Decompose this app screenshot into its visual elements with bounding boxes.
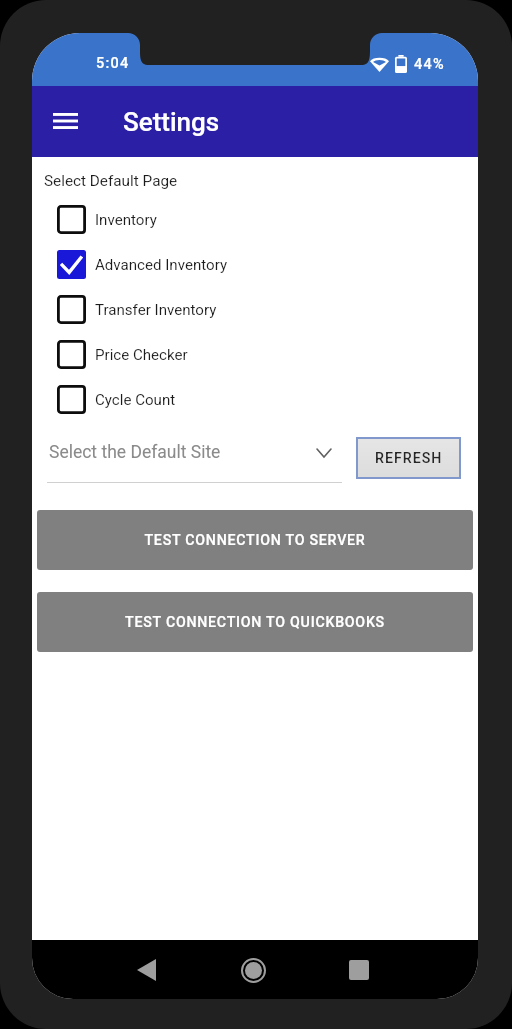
staticText: TEST CONNECTION TO SERVER — [144, 532, 366, 549]
button[interactable]: Home — [229, 946, 277, 994]
staticText: Transfer Inventory — [95, 301, 217, 319]
button[interactable]: TEST CONNECTION TO SERVER — [37, 510, 473, 570]
staticText: Cycle Count — [95, 391, 176, 409]
button[interactable]: Back — [122, 946, 170, 994]
button[interactable]: Transfer Inventory — [32, 287, 478, 332]
staticText: Inventory — [95, 211, 157, 229]
staticText: Select Default Page — [44, 172, 178, 190]
button[interactable]: Open navigation menu — [43, 99, 87, 143]
button[interactable]: Advanced Inventory — [32, 242, 478, 287]
button[interactable]: Inventory — [32, 197, 478, 242]
button[interactable]: REFRESH — [356, 437, 461, 479]
staticText: TEST CONNECTION TO QUICKBOOKS — [125, 614, 385, 631]
button[interactable]: Cycle Count — [32, 377, 478, 422]
staticText: Price Checker — [95, 346, 188, 364]
button[interactable]: Price Checker — [32, 332, 478, 377]
staticText: Settings — [123, 107, 220, 137]
staticText: 5:04 — [96, 55, 130, 72]
button[interactable]: Recent apps — [335, 946, 383, 994]
button[interactable]: Select the Default Site — [47, 433, 342, 483]
button[interactable]: TEST CONNECTION TO QUICKBOOKS — [37, 592, 473, 652]
staticText: Select the Default Site — [49, 442, 317, 463]
staticText: 44% — [414, 56, 445, 73]
staticText: Advanced Inventory — [95, 256, 228, 274]
staticText: REFRESH — [375, 450, 443, 467]
